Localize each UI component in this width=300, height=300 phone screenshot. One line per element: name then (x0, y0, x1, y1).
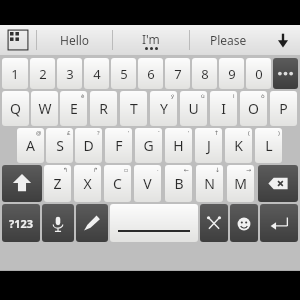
button[interactable]: Handwriting (76, 204, 108, 242)
button[interactable]: W (31, 91, 58, 126)
button[interactable]: 5 (111, 58, 136, 89)
button[interactable]: P (270, 91, 297, 126)
button[interactable]: 2 (30, 58, 55, 89)
staticText: V (143, 174, 152, 193)
button[interactable]: Voice input (42, 204, 74, 242)
staticText: ' (188, 129, 190, 137)
staticText: ? (97, 129, 100, 137)
button[interactable]: 6 (138, 58, 163, 89)
staticText: Z (53, 174, 62, 193)
staticText: 9 (228, 65, 236, 83)
button[interactable]: Symbols (2, 204, 40, 242)
button[interactable]: 7 (165, 58, 190, 89)
staticText: ` (158, 129, 160, 137)
button[interactable]: Y (150, 91, 177, 126)
button[interactable]: 3 (57, 58, 82, 89)
staticText: R (99, 99, 108, 118)
button[interactable]: K (225, 128, 252, 163)
staticText: → (246, 166, 252, 173)
button[interactable]: N (196, 165, 223, 202)
button[interactable]: S (46, 128, 73, 163)
staticText: Q (10, 99, 21, 118)
staticText: ↰ (63, 166, 69, 173)
staticText: 3 (66, 65, 74, 83)
button[interactable]: 9 (219, 58, 244, 89)
button[interactable]: 0 (246, 58, 271, 89)
staticText: E (70, 99, 78, 118)
button[interactable]: T (120, 91, 147, 126)
staticText: 7 (174, 65, 182, 83)
staticText: 4 (93, 65, 101, 83)
button[interactable]: 4 (84, 58, 109, 89)
staticText: 2 (39, 65, 47, 83)
button[interactable]: Backspace (258, 165, 298, 202)
staticText: 6 (147, 65, 155, 83)
staticText: L (265, 136, 273, 155)
staticText: T (130, 99, 138, 118)
button[interactable]: E (60, 91, 87, 126)
button[interactable]: J (195, 128, 222, 163)
staticText: ← (184, 166, 190, 173)
staticText: I (221, 99, 226, 118)
staticText: ) (278, 129, 280, 137)
button[interactable]: Please (190, 25, 266, 55)
staticText: N (204, 174, 215, 193)
button[interactable]: C (104, 165, 131, 202)
button[interactable]: L (255, 128, 282, 163)
staticText: ì (233, 92, 235, 100)
staticText: W (38, 99, 52, 118)
button[interactable]: Enter (260, 204, 298, 242)
button[interactable]: F (105, 128, 132, 163)
staticText: K (234, 136, 243, 155)
button[interactable]: A (17, 128, 44, 163)
staticText: P (279, 99, 288, 118)
button[interactable]: Emoji (230, 204, 258, 242)
staticText: C (113, 174, 122, 193)
staticText: Hello (60, 32, 90, 48)
button[interactable]: Keyboard modes (0, 25, 36, 55)
staticText: ▫ (124, 166, 129, 173)
button[interactable]: Shift (2, 165, 42, 202)
button[interactable]: I'm (113, 25, 189, 55)
button[interactable]: More options (273, 58, 298, 89)
staticText: Y (160, 99, 168, 118)
staticText: B (174, 174, 184, 193)
staticText: 8 (201, 65, 209, 83)
staticText: è (81, 92, 85, 100)
staticText: @ (36, 129, 42, 137)
button[interactable]: Z (44, 165, 71, 202)
staticText: ↑ (214, 129, 220, 136)
staticText: ' (128, 129, 130, 137)
staticText: H (173, 136, 184, 155)
staticText: J (207, 136, 211, 155)
staticText: ù (201, 92, 205, 100)
staticText: Please (210, 32, 247, 48)
button[interactable]: Q (2, 91, 29, 126)
button[interactable]: U (180, 91, 207, 126)
button[interactable]: O (240, 91, 267, 126)
staticText: ý (171, 92, 175, 100)
staticText: ò (261, 92, 265, 100)
button[interactable]: M (227, 165, 254, 202)
button[interactable]: R (90, 91, 117, 126)
staticText: M (234, 174, 247, 193)
button[interactable]: X (74, 165, 101, 202)
staticText: ↱ (93, 166, 99, 173)
button[interactable]: Hello (37, 25, 112, 55)
button[interactable]: 8 (192, 58, 217, 89)
button[interactable]: Settings (200, 204, 228, 242)
button[interactable]: B (165, 165, 192, 202)
staticText: I'm (142, 31, 160, 47)
button[interactable]: H (165, 128, 192, 163)
button[interactable]: I (210, 91, 237, 126)
staticText: G (143, 136, 154, 155)
button[interactable]: V (134, 165, 161, 202)
button[interactable]: G (135, 128, 162, 163)
button[interactable]: 1 (2, 58, 28, 89)
staticText: ( (248, 129, 250, 137)
staticText: ?123 (9, 216, 34, 231)
button[interactable]: Hide keyboard (266, 25, 300, 55)
button[interactable]: Space (110, 204, 198, 242)
staticText: U (188, 99, 199, 118)
button[interactable]: D (75, 128, 102, 163)
